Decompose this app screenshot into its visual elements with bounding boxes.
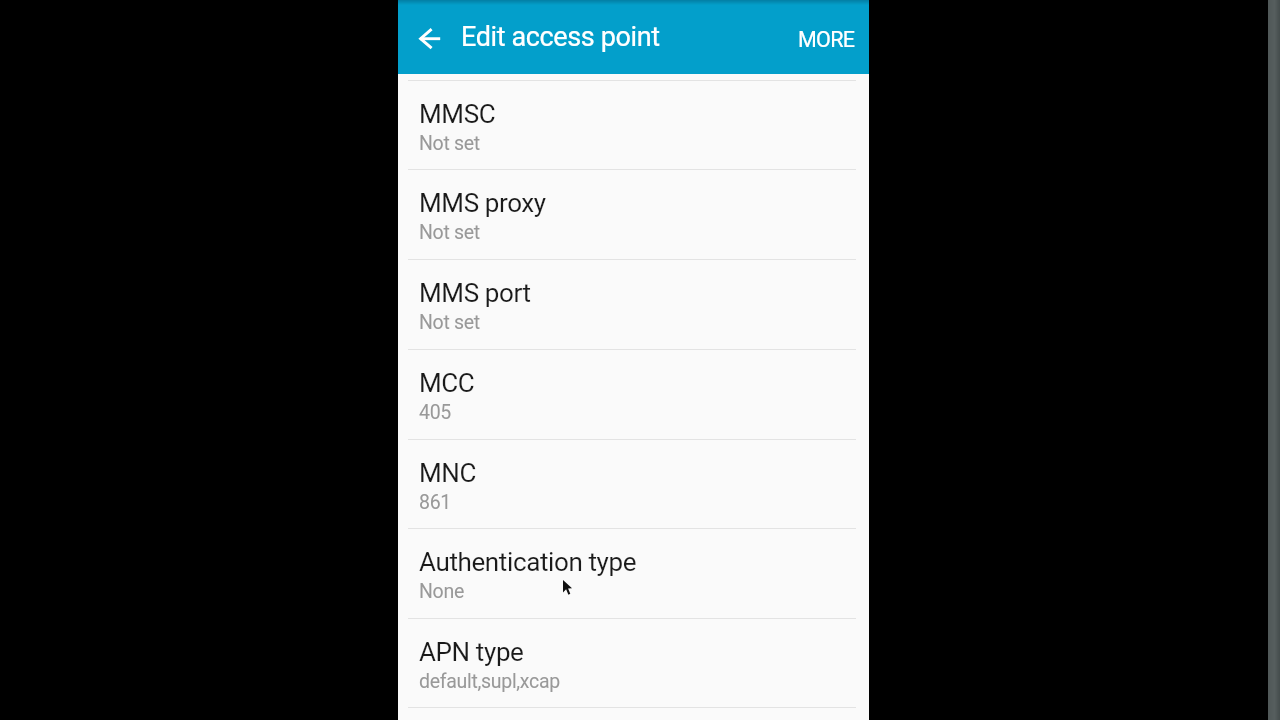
staticText: None xyxy=(419,580,464,603)
staticText: Not set xyxy=(419,132,480,155)
button[interactable]: MMSC xyxy=(398,81,869,170)
button[interactable]: MORE xyxy=(782,0,869,74)
button[interactable]: MMS port xyxy=(398,260,869,350)
staticText: MCC xyxy=(419,368,475,398)
button[interactable]: MNC xyxy=(398,440,869,529)
button[interactable]: Back xyxy=(406,13,454,61)
staticText: MMS proxy xyxy=(419,188,546,218)
staticText: 861 xyxy=(419,491,451,514)
staticText: MNC xyxy=(419,458,477,488)
button[interactable]: Authentication type xyxy=(398,529,869,619)
staticText: Not set xyxy=(419,221,480,244)
staticText: 405 xyxy=(419,401,451,424)
staticText: MMS port xyxy=(419,278,531,308)
staticText: Not set xyxy=(419,311,480,334)
button[interactable]: MCC xyxy=(398,350,869,440)
button[interactable]: MMS proxy xyxy=(398,170,869,260)
staticText: default,supl,xcap xyxy=(419,670,560,693)
staticText: Authentication type xyxy=(419,547,637,577)
button[interactable]: APN type xyxy=(398,619,869,708)
staticText: Edit access point xyxy=(461,21,660,53)
staticText: MORE xyxy=(798,27,855,52)
staticText: MMSC xyxy=(419,99,496,129)
staticText: APN type xyxy=(419,637,524,667)
